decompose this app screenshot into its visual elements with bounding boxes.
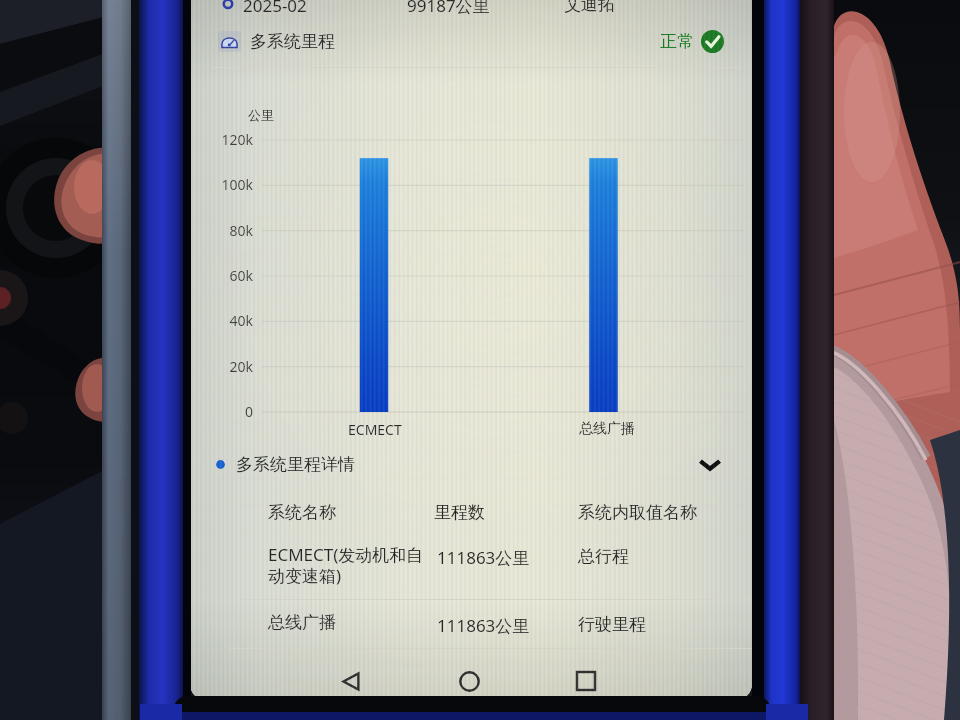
staticText: 行驶里程 bbox=[578, 614, 646, 635]
staticText: 系统名称 bbox=[268, 502, 336, 523]
other: Expand details bbox=[697, 451, 723, 477]
staticText: 100k bbox=[193, 175, 253, 194]
staticText: 正常 bbox=[660, 31, 694, 52]
staticText: 0 bbox=[193, 402, 253, 421]
staticText: 111863公里 bbox=[437, 546, 530, 569]
staticText: 总行程 bbox=[578, 546, 629, 567]
staticText: 公里 bbox=[248, 107, 274, 123]
staticText: 系统内取值名称 bbox=[578, 502, 697, 523]
staticText: 总线广播 bbox=[579, 420, 635, 438]
button[interactable]: Back bbox=[328, 658, 374, 700]
staticText: 2025-02 bbox=[243, 0, 307, 17]
staticText: 20k bbox=[193, 357, 253, 376]
staticText: 80k bbox=[193, 221, 253, 240]
staticText: 99187公里 bbox=[407, 0, 490, 17]
button[interactable]: 多系统里程 bbox=[190, 21, 752, 61]
staticText: 60k bbox=[193, 266, 253, 285]
button[interactable]: 总线广播 bbox=[268, 612, 728, 638]
button[interactable]: ECMECT(发动机和自动变速箱) bbox=[268, 543, 448, 591]
staticText: 120k bbox=[193, 130, 253, 149]
staticText: ECMECT(发动机和自动变速箱) bbox=[268, 543, 426, 588]
staticText: 里程数 bbox=[434, 502, 485, 523]
staticText: 艾迪拓 bbox=[564, 0, 615, 15]
button[interactable]: Recent apps bbox=[563, 658, 609, 700]
button[interactable]: Home bbox=[446, 658, 492, 700]
staticText: 40k bbox=[193, 311, 253, 330]
staticText: 总线广播 bbox=[268, 612, 336, 633]
staticText: 111863公里 bbox=[437, 614, 530, 637]
staticText: 多系统里程 bbox=[250, 31, 335, 52]
staticText: 多系统里程详情 bbox=[236, 454, 355, 475]
staticText: ECMECT bbox=[348, 420, 402, 439]
button[interactable]: 多系统里程详情 bbox=[190, 443, 752, 485]
